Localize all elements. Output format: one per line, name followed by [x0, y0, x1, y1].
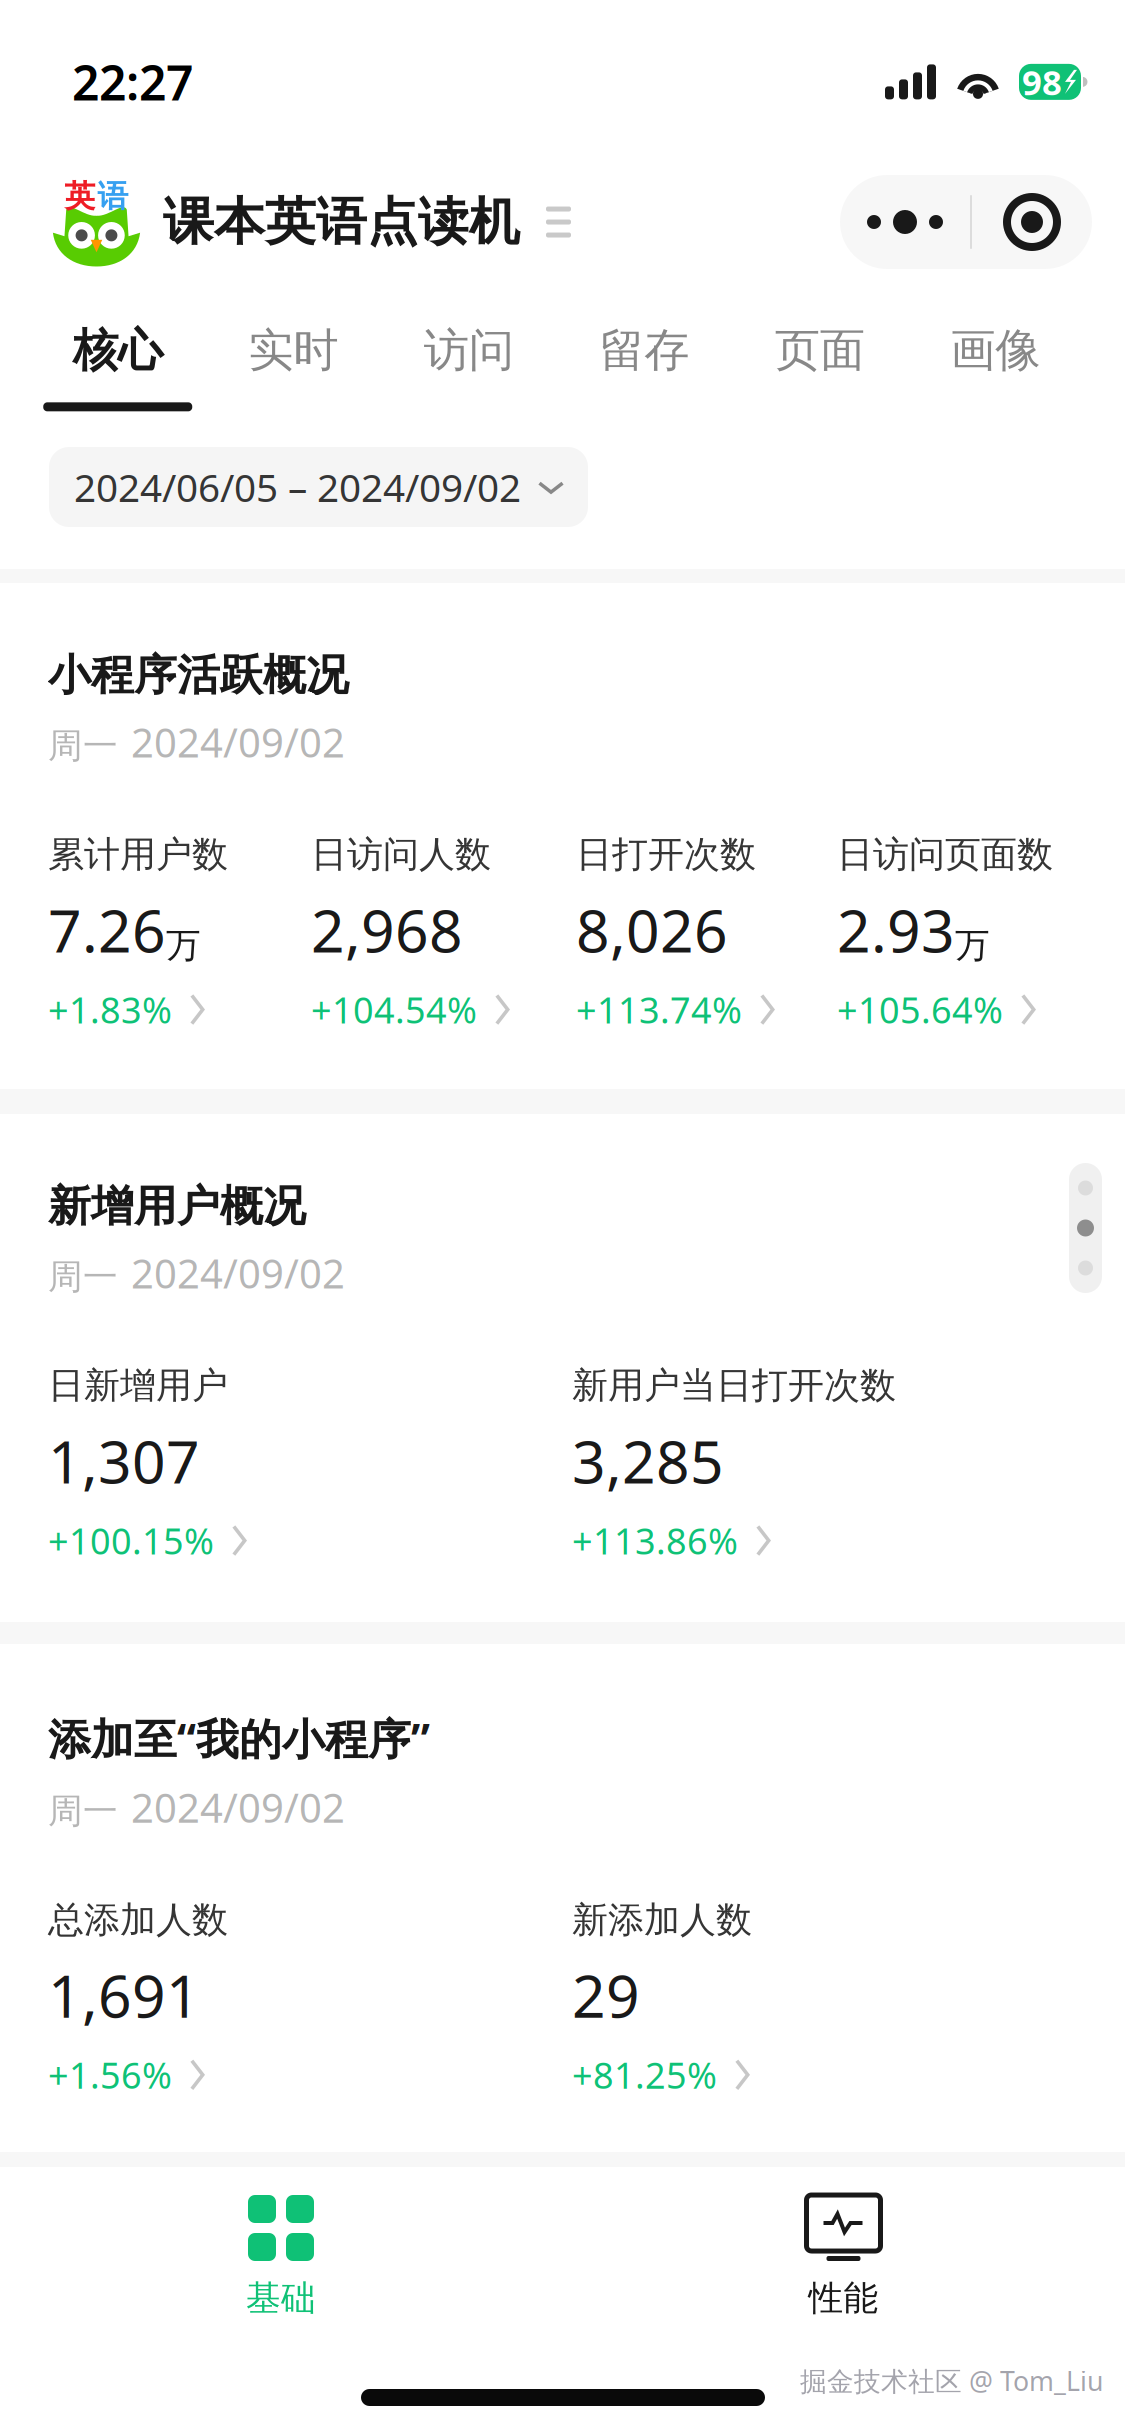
staticText: 22:27: [72, 50, 193, 114]
staticText: 29: [572, 1956, 640, 2034]
button[interactable]: 累计用户数: [48, 832, 228, 1033]
staticText: 7.26: [48, 891, 166, 969]
staticText: 日新增用户: [48, 1363, 228, 1408]
staticText: +1.83%: [48, 986, 172, 1033]
staticText: 基础: [246, 2277, 316, 2320]
staticText: 性能: [808, 2277, 878, 2320]
staticText: 累计用户数: [48, 832, 228, 877]
staticText: 2024/09/02: [131, 1781, 345, 1834]
staticText: +1.56%: [48, 2051, 172, 2099]
staticText: +81.25%: [572, 2051, 717, 2099]
button[interactable]: 画像: [907, 323, 1083, 411]
staticText: 课本英语点读机: [163, 191, 520, 253]
staticText: 语: [97, 177, 128, 215]
button[interactable]: 访问: [381, 323, 556, 411]
staticText: 8,026: [576, 891, 728, 969]
button[interactable]: 总添加人数: [48, 1898, 228, 2099]
button[interactable]: 日访问页面数: [837, 832, 1053, 1033]
staticText: 新添加人数: [572, 1898, 752, 1942]
staticText: 留存: [599, 323, 689, 378]
button[interactable]: 日访问人数: [311, 832, 510, 1033]
staticText: 3,285: [572, 1422, 724, 1500]
button[interactable]: 核心: [30, 323, 205, 411]
staticText: +105.64%: [837, 986, 1003, 1033]
staticText: 添加至“我的小程序”: [48, 1710, 430, 1767]
staticText: 万: [955, 924, 990, 967]
staticText: 2024/06/05 – 2024/09/02: [74, 461, 521, 513]
staticText: 页面: [775, 323, 865, 378]
staticText: +113.74%: [576, 986, 742, 1033]
button[interactable]: 2024/06/05 – 2024/09/02: [49, 447, 588, 527]
staticText: 访问: [424, 323, 514, 378]
staticText: 总添加人数: [48, 1898, 228, 1942]
button[interactable]: 日打开次数: [576, 832, 775, 1033]
button[interactable]: 留存: [556, 323, 732, 411]
staticText: 98: [1022, 59, 1062, 105]
staticText: 周一: [48, 725, 118, 767]
staticText: 日打开次数: [576, 832, 756, 877]
staticText: 2024/09/02: [131, 715, 345, 768]
button[interactable]: 日新增用户: [48, 1363, 247, 1564]
staticText: +100.15%: [48, 1517, 214, 1564]
button[interactable]: 性能: [562, 2167, 1125, 2353]
button[interactable]: 基础: [0, 2167, 562, 2353]
button[interactable]: Close mini program: [972, 175, 1092, 269]
staticText: 掘金技术社区 @ Tom_Liu: [800, 2363, 1103, 2398]
staticText: 2.93: [837, 891, 955, 969]
staticText: 英: [65, 177, 96, 215]
staticText: 核心: [73, 323, 163, 378]
staticText: 小程序活跃概况: [48, 649, 349, 701]
staticText: +104.54%: [311, 986, 477, 1033]
staticText: +113.86%: [572, 1517, 738, 1564]
staticText: 周一: [48, 1790, 118, 1832]
button[interactable]: More options: [840, 175, 970, 269]
staticText: 日访问人数: [311, 832, 491, 877]
staticText: 周一: [48, 1256, 118, 1298]
button[interactable]: 实时: [205, 323, 381, 411]
staticText: 新增用户概况: [48, 1180, 306, 1232]
staticText: 日访问页面数: [837, 832, 1053, 877]
button[interactable]: 页面: [732, 323, 907, 411]
staticText: 1,691: [48, 1956, 200, 2034]
staticText: 实时: [248, 323, 338, 378]
staticText: 万: [166, 924, 201, 967]
staticText: 新用户当日打开次数: [572, 1363, 896, 1408]
staticText: 1,307: [48, 1422, 200, 1500]
button[interactable]: 新添加人数: [572, 1898, 752, 2099]
staticText: 画像: [950, 323, 1040, 378]
staticText: 2024/09/02: [131, 1246, 345, 1299]
button[interactable]: 新用户当日打开次数: [572, 1363, 896, 1564]
staticText: 2,968: [311, 891, 463, 969]
